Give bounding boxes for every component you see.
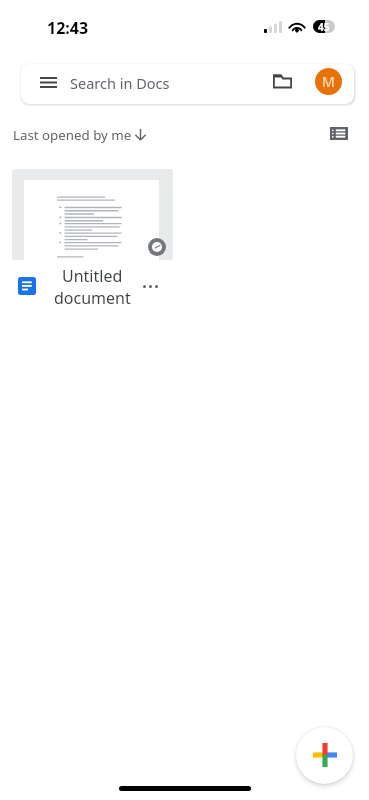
staticText: Search in Docs <box>70 73 170 93</box>
button[interactable]: Last opened by me <box>7 124 152 146</box>
button[interactable]: Open navigation menu <box>29 64 67 102</box>
staticText: 45 <box>318 20 330 33</box>
button[interactable]: Create new document <box>296 727 353 784</box>
button[interactable]: Switch to list view <box>326 120 352 146</box>
button[interactable] <box>12 169 173 260</box>
button[interactable]: Folders <box>267 64 297 101</box>
button[interactable]: Open navigation menu <box>21 64 354 104</box>
staticText: Untitled <box>62 265 123 287</box>
button[interactable]: Account <box>315 68 342 95</box>
button[interactable] <box>12 262 173 312</box>
staticText: 12:43 <box>47 17 89 39</box>
staticText: Last opened by me <box>13 126 132 144</box>
staticText: M <box>322 72 335 91</box>
button[interactable]: More options <box>138 274 162 298</box>
staticText: document <box>54 287 131 309</box>
